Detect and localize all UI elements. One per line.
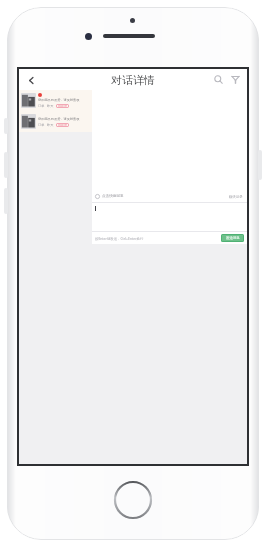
staticText: 发送消息 xyxy=(226,236,240,240)
button[interactable]: 您的商品已发货，请及时查收 xyxy=(19,111,92,132)
staticText: 昨天 xyxy=(47,123,54,127)
staticText: 点击快捷回复 xyxy=(102,194,124,199)
button[interactable]: 您的商品已发货，请及时查收 xyxy=(19,90,92,111)
staticText: 对话详情 xyxy=(111,73,155,87)
button[interactable]: 发送消息 xyxy=(221,234,244,242)
button[interactable]: Filter xyxy=(228,72,243,87)
button[interactable]: Back xyxy=(22,71,40,89)
staticText: 您的商品已发货，请及时查收 xyxy=(38,117,80,121)
staticText: 待处理 xyxy=(58,123,67,127)
staticText: 聊天记录 xyxy=(229,195,243,199)
staticText: 订单 xyxy=(38,123,45,127)
staticText: 昨天 xyxy=(47,104,54,108)
staticText: 待处理 xyxy=(58,104,67,108)
staticText: 订单 xyxy=(38,104,45,108)
staticText: 您的商品已发货，请及时查收 xyxy=(38,98,80,102)
staticText: 按Enter键发送，Ctrl+Enter换行 xyxy=(95,236,144,241)
button[interactable]: Search xyxy=(211,72,226,87)
